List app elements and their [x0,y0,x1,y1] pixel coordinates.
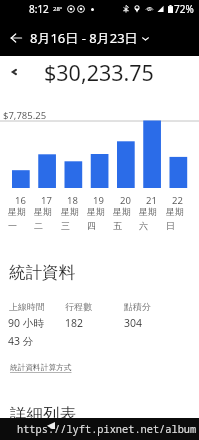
staticText: 72% [174,2,194,16]
button[interactable]: Back [9,31,23,45]
staticText: 90 小時 [8,316,44,330]
staticText: 星期 [34,206,52,217]
staticText: 星期 [166,206,184,217]
staticText: 22 [172,194,183,207]
staticText: 星期 [8,206,26,217]
staticText: https://lyft.pixnet.net/album [17,422,197,436]
staticText: 18 [67,194,78,207]
staticText: 星期 [113,206,131,217]
button[interactable]: 統計資料計算方式 [10,363,72,373]
staticText: 17 [41,194,52,207]
staticText: 182 [65,316,84,330]
staticText: 五 [113,220,122,231]
button[interactable]: 8月16日 - 8月23日 [30,29,149,47]
staticText: 日 [166,220,175,231]
staticText: $30,233.75 [44,58,154,87]
staticText: 統計資料 [9,262,75,283]
staticText: 20 [120,194,131,207]
staticText: 六 [139,220,148,231]
staticText: 8:12 [29,2,49,16]
staticText: 星期 [61,206,79,217]
staticText: 點積分 [124,301,151,312]
staticText: 上線時間 [9,301,45,312]
staticText: 一 [8,220,17,231]
staticText: 星期 [139,206,157,217]
staticText: 三 [61,220,70,231]
staticText: 星期 [87,206,105,217]
staticText: 19 [93,194,104,207]
staticText: 8月16日 - 8月23日 [30,29,138,47]
staticText: 詳細列表 [10,404,76,425]
staticText: $7,785.25 [3,109,47,122]
staticText: 二 [34,220,43,231]
staticText: 43 分 [8,334,34,348]
staticText: 28° [53,5,63,13]
staticText: 16 [15,194,26,207]
staticText: 21 [146,194,157,207]
staticText: 行程數 [65,301,92,312]
staticText: 304 [124,316,143,330]
staticText: 四 [87,220,96,231]
button[interactable]: Previous period [7,63,21,81]
